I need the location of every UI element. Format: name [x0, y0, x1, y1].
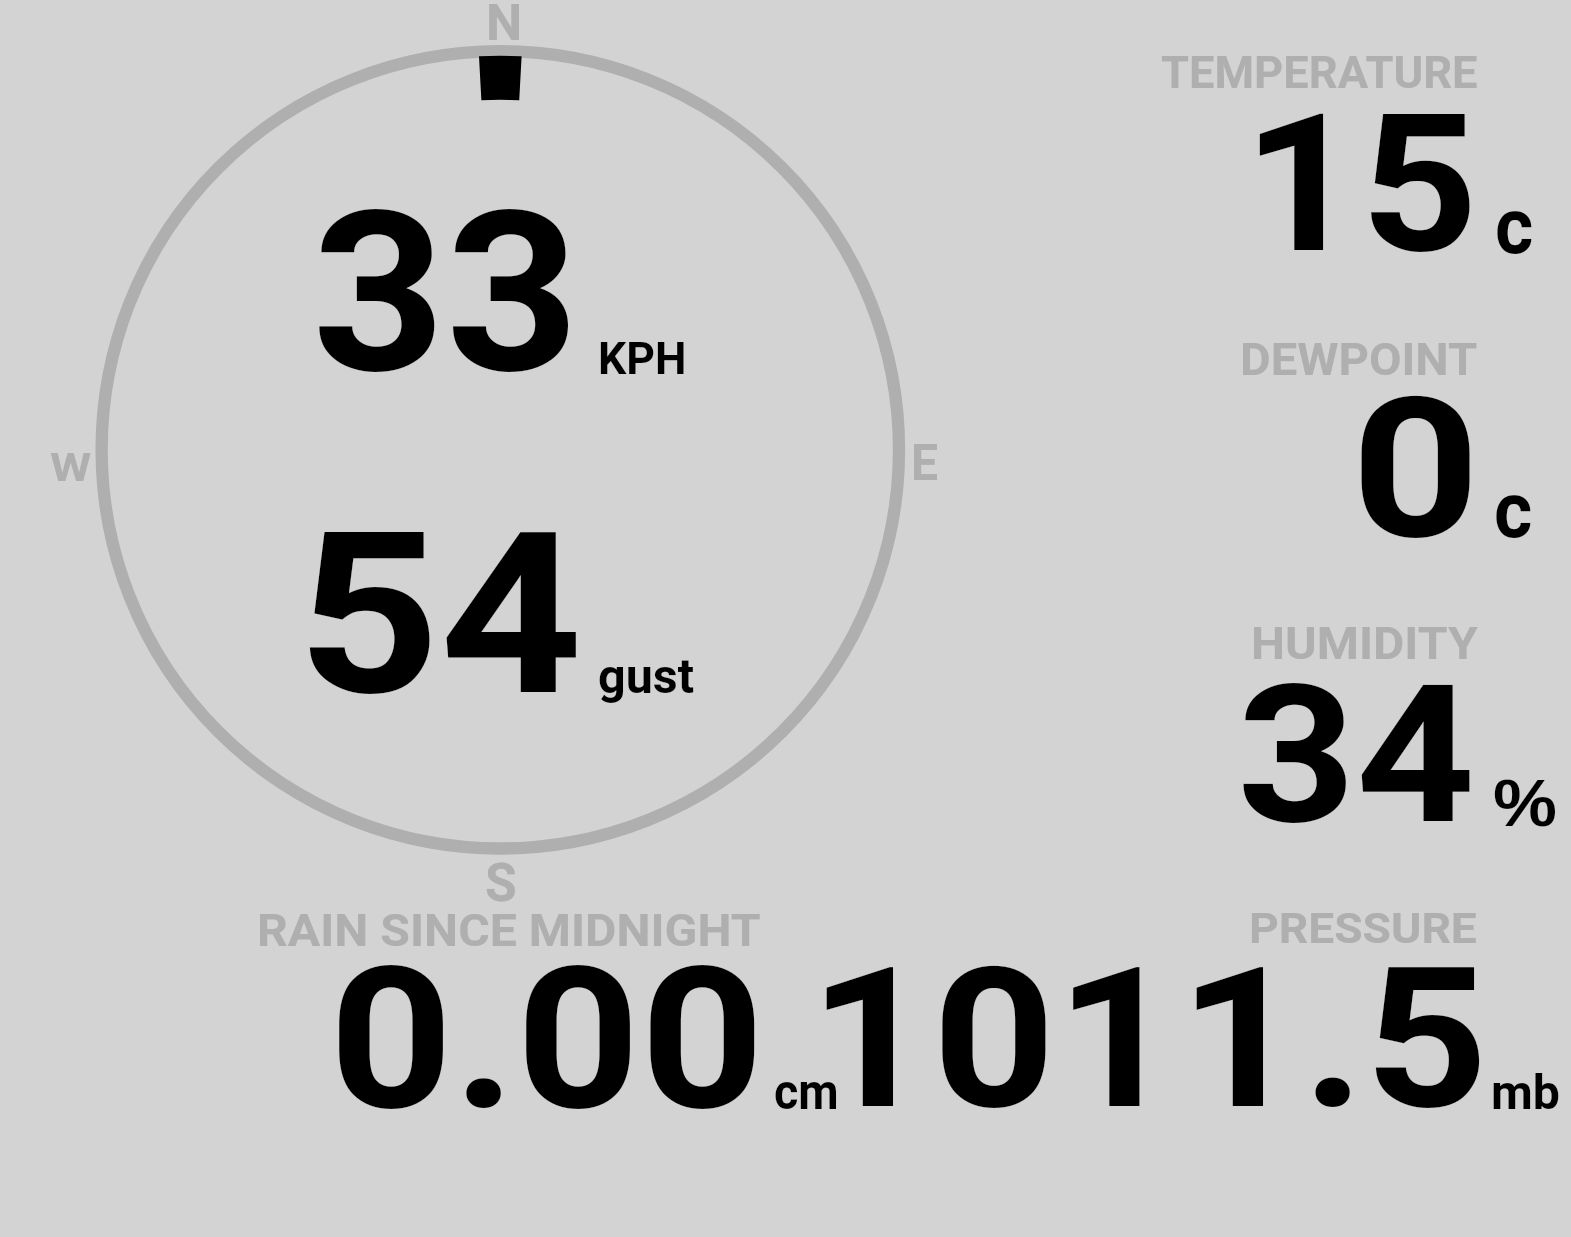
- staticText: 15: [1243, 73, 1479, 297]
- staticText: 34: [1237, 644, 1475, 867]
- staticText: W: [50, 445, 92, 490]
- staticText: cm: [774, 1063, 839, 1122]
- staticText: S: [485, 851, 518, 914]
- staticText: PRESSURE: [1249, 903, 1478, 954]
- staticText: 0: [1351, 356, 1481, 583]
- staticText: 0.00: [329, 924, 765, 1155]
- button[interactable]: Rain since midnight 0.00 cm: [250, 890, 850, 1130]
- staticText: mb: [1491, 1064, 1560, 1120]
- button[interactable]: Temperature 15 C: [1140, 40, 1570, 310]
- staticText: N: [486, 0, 523, 52]
- staticText: RAIN SINCE MIDNIGHT: [257, 905, 761, 957]
- button[interactable]: Pressure 1011.5 mb: [860, 890, 1570, 1130]
- staticText: c: [1494, 465, 1532, 556]
- staticText: TEMPERATURE: [1161, 48, 1478, 99]
- button[interactable]: Wind: 33 KPH, gusting 54, from the north: [100, 50, 900, 850]
- button[interactable]: Dewpoint 0 C: [1140, 320, 1570, 590]
- staticText: 54: [297, 483, 583, 747]
- staticText: DEWPOINT: [1240, 334, 1478, 385]
- staticText: 1011.5: [809, 925, 1489, 1154]
- staticText: 33: [312, 164, 580, 425]
- button[interactable]: Humidity 34 %: [1140, 600, 1570, 870]
- staticText: KPH: [598, 332, 687, 385]
- staticText: gust: [598, 649, 695, 705]
- staticText: %: [1493, 766, 1557, 840]
- staticText: c: [1495, 181, 1533, 272]
- staticText: HUMIDITY: [1251, 618, 1479, 669]
- staticText: E: [911, 433, 939, 492]
